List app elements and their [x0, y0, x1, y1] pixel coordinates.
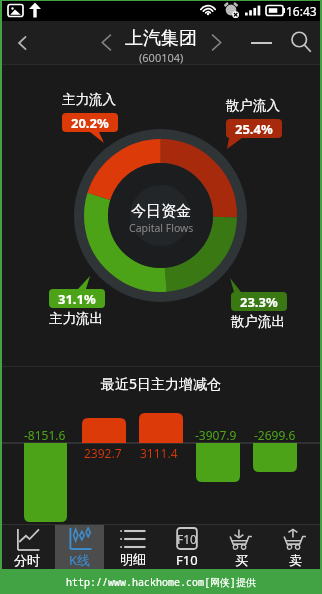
staticText: 散户流出: [231, 313, 285, 330]
button[interactable]: K线: [55, 525, 104, 569]
staticText: -2699.6: [254, 427, 296, 443]
button[interactable]: Search: [280, 21, 322, 64]
staticText: 卖: [289, 552, 302, 568]
button[interactable]: Menu: [242, 21, 280, 64]
button[interactable]: 分时: [2, 525, 51, 569]
button[interactable]: Next stock: [200, 21, 232, 64]
staticText: 31.1%: [58, 290, 96, 308]
staticText: 20.2%: [71, 114, 109, 132]
staticText: 23.3%: [240, 293, 278, 311]
staticText: 16:43: [286, 3, 317, 19]
button[interactable]: 明细: [108, 525, 158, 569]
button[interactable]: 买: [216, 525, 266, 569]
staticText: http://www.hackhome.com[网侠]提供: [66, 575, 256, 589]
staticText: 分时: [14, 552, 40, 568]
staticText: -3907.9: [195, 427, 237, 443]
staticText: 主力流入: [62, 91, 116, 108]
staticText: (600104): [139, 50, 184, 65]
staticText: K线: [69, 551, 91, 569]
button[interactable]: 卖: [270, 525, 320, 569]
staticText: 明细: [120, 551, 146, 567]
staticText: 散户流入: [226, 97, 280, 114]
staticText: 最近5日主力增减仓: [101, 374, 222, 393]
staticText: Capital Flows: [129, 221, 194, 235]
staticText: 今日资金: [131, 202, 191, 221]
button[interactable]: Previous stock: [90, 21, 122, 64]
staticText: 25.4%: [235, 120, 273, 138]
staticText: 3111.4: [140, 445, 178, 461]
button[interactable]: F10: [162, 525, 212, 569]
staticText: F10: [176, 551, 198, 569]
staticText: 买: [235, 552, 248, 568]
staticText: 主力流出: [49, 310, 103, 327]
staticText: 上汽集团: [125, 27, 197, 50]
button[interactable]: Back: [0, 21, 46, 64]
staticText: -8151.6: [24, 427, 66, 443]
staticText: 2392.7: [84, 445, 122, 461]
staticText: F10: [177, 531, 197, 547]
